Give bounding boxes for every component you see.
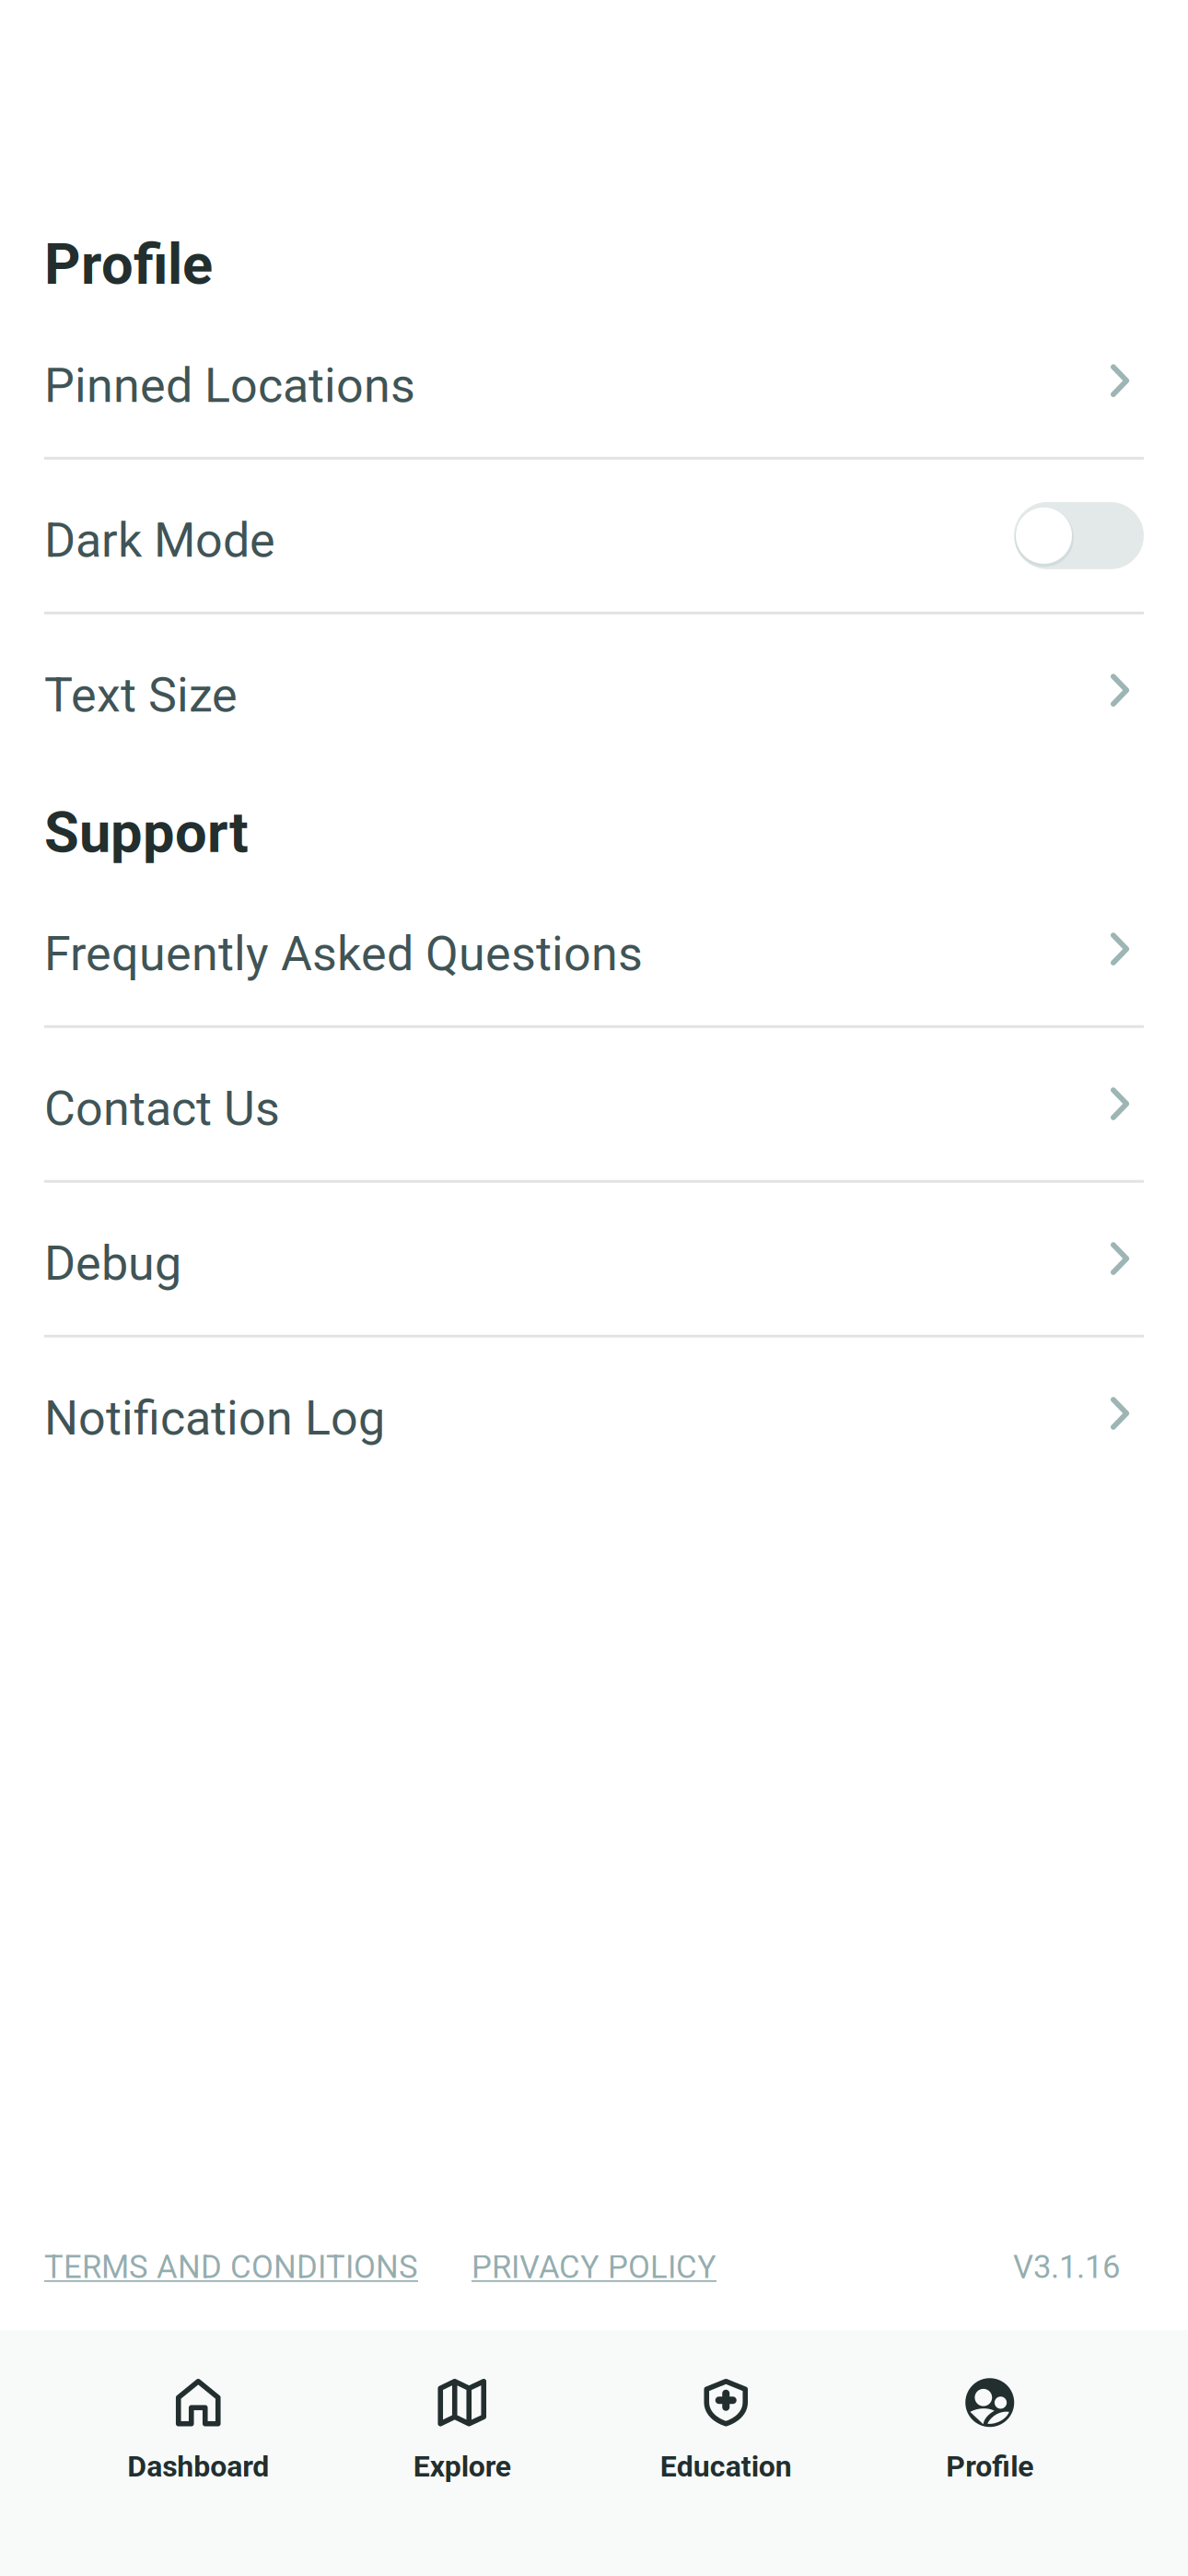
staticText: Education xyxy=(660,2449,792,2484)
button[interactable]: Debug xyxy=(0,1183,1188,1335)
staticText: Dashboard xyxy=(127,2449,269,2484)
button[interactable]: Notification Log xyxy=(0,1337,1188,1489)
button[interactable]: TERMS AND CONDITIONS xyxy=(44,2248,418,2286)
staticText: Debug xyxy=(44,1235,181,1291)
staticText: Profile xyxy=(946,2449,1033,2484)
staticText: Contact Us xyxy=(44,1081,280,1137)
staticText: Text Size xyxy=(44,667,238,723)
button[interactable]: Text Size xyxy=(0,614,1188,766)
button[interactable]: Profile xyxy=(858,2330,1122,2576)
staticText: Notification Log xyxy=(44,1390,385,1446)
staticText: Support xyxy=(44,800,249,866)
button[interactable]: Frequently Asked Questions xyxy=(0,873,1188,1025)
button[interactable]: Explore xyxy=(330,2330,594,2576)
staticText: Pinned Locations xyxy=(44,357,415,413)
button[interactable]: PRIVACY POLICY xyxy=(472,2248,716,2286)
staticText: Dark Mode xyxy=(44,512,275,568)
button[interactable]: Contact Us xyxy=(0,1028,1188,1180)
staticText: V3.1.16 xyxy=(1013,2248,1120,2286)
staticText: Explore xyxy=(413,2449,511,2484)
button[interactable]: Pinned Locations xyxy=(0,305,1188,457)
staticText: PRIVACY POLICY xyxy=(472,2248,716,2286)
staticText: Profile xyxy=(44,231,213,297)
button[interactable]: Dark Mode xyxy=(0,460,1188,612)
button[interactable]: Education xyxy=(594,2330,858,2576)
staticText: Frequently Asked Questions xyxy=(44,926,643,982)
button[interactable]: Dashboard xyxy=(66,2330,330,2576)
staticText: TERMS AND CONDITIONS xyxy=(44,2248,418,2286)
